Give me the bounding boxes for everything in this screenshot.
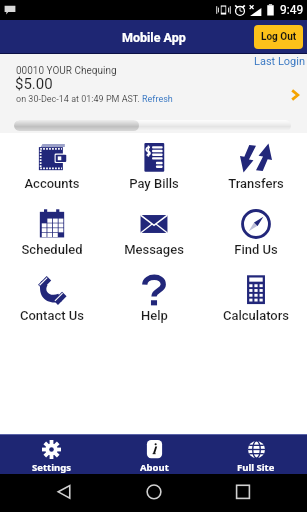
other: Recents [235,484,251,500]
button[interactable]: Transfers [205,142,307,208]
staticText: Full Site [237,461,275,474]
button[interactable]: Scheduled [0,208,103,274]
other: Next account [288,88,302,102]
staticText: 00010 YOUR Chequing [16,65,117,77]
button[interactable]: Settings [0,434,103,474]
button[interactable]: Contact Us [0,274,103,340]
button[interactable]: Refresh [142,94,173,105]
staticText: on 30-Dec-14 at 01:49 PM AST. [16,94,142,105]
staticText: About [140,461,169,474]
staticText: $5.00 [15,75,53,93]
staticText: Accounts [24,176,80,191]
staticText: 9:49 [280,3,304,17]
staticText: Calculators [223,308,289,323]
staticText: Transfers [228,176,284,191]
button[interactable]: Help [103,274,205,340]
staticText: Help [141,308,168,323]
staticText: Settings [32,461,71,474]
button[interactable]: Find Us [205,208,307,274]
button[interactable]: Last Login [254,55,306,68]
staticText: Messages [124,242,184,257]
staticText: Scheduled [21,242,83,257]
button[interactable]: Accounts [0,142,103,208]
other: Home [146,484,162,500]
button[interactable]: Pay Bills [103,142,205,208]
staticText: Log Out [261,31,297,43]
staticText: Contact Us [20,308,84,323]
other: Back [56,484,72,500]
staticText: Mobile App [122,30,186,45]
button[interactable]: Calculators [205,274,307,340]
button[interactable]: Log Out [254,25,303,49]
staticText: Pay Bills [129,176,179,191]
button[interactable]: Messages [103,208,205,274]
button[interactable]: About [103,434,205,474]
button[interactable]: Full Site [205,434,307,474]
staticText: Find Us [234,242,278,257]
